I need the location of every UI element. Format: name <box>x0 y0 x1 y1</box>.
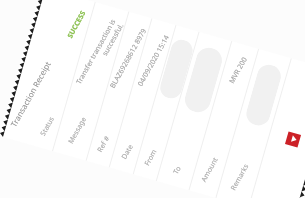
staticText: Transfer transaction is successful. <box>73 13 126 96</box>
staticText: From <box>142 146 160 169</box>
staticText: Message <box>65 113 90 148</box>
staticText: Status <box>38 113 58 139</box>
button[interactable]: Download PDF receipt <box>285 131 301 147</box>
staticText: Transaction Receipt <box>7 54 54 133</box>
staticText: Ref # <box>95 133 113 155</box>
staticText: To <box>171 164 184 177</box>
staticText: 04/09/2020 15:14 <box>135 30 172 92</box>
staticText: Remarks <box>228 160 252 194</box>
staticText: SUCCESS <box>64 7 89 42</box>
staticText: BLAZ69268612 8979 <box>107 23 150 95</box>
staticText: Amount <box>198 154 221 186</box>
staticText: MVR 200 <box>226 54 250 88</box>
staticText: Date <box>119 141 136 162</box>
